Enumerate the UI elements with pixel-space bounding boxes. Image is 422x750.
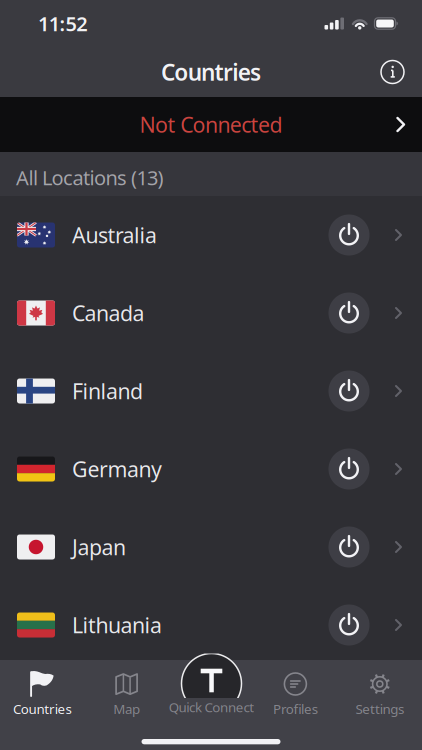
button[interactable]: Japan	[0, 508, 422, 586]
staticText: Canada	[72, 299, 144, 327]
button[interactable]	[169, 671, 253, 718]
button[interactable]	[328, 526, 369, 567]
staticText: Japan	[72, 533, 126, 561]
staticText: 11:52	[38, 10, 87, 37]
button[interactable]: Countries	[0, 671, 84, 718]
button[interactable]	[328, 370, 369, 411]
button[interactable]: Quick Connect	[169, 698, 254, 716]
button[interactable]: Germany	[0, 430, 422, 508]
button[interactable]	[328, 448, 369, 489]
button[interactable]: Profiles	[253, 671, 338, 718]
button[interactable]	[328, 604, 369, 645]
staticText: Profiles	[273, 700, 318, 718]
button[interactable]	[328, 214, 369, 255]
button[interactable]: Map	[84, 671, 169, 718]
button[interactable]: Not Connected	[0, 97, 422, 152]
staticText: Map	[113, 700, 140, 718]
staticText: Not Connected	[140, 110, 282, 139]
staticText: Settings	[355, 700, 404, 718]
staticText: Finland	[72, 377, 143, 405]
button[interactable]	[180, 653, 242, 698]
staticText: Australia	[72, 221, 157, 249]
button[interactable]: Finland	[0, 352, 422, 430]
staticText: Countries	[13, 700, 71, 718]
button[interactable]: Settings	[338, 671, 422, 718]
staticText: Countries	[161, 57, 261, 87]
button[interactable]: Australia	[0, 196, 422, 274]
button[interactable]	[328, 292, 369, 333]
staticText: Quick Connect	[169, 698, 254, 716]
button[interactable]: Canada	[0, 274, 422, 352]
button[interactable]: Lithuania	[0, 586, 422, 664]
staticText: Lithuania	[72, 611, 162, 639]
button[interactable]	[381, 60, 422, 83]
staticText: Germany	[72, 455, 162, 483]
staticText: All Locations (13)	[16, 164, 163, 191]
